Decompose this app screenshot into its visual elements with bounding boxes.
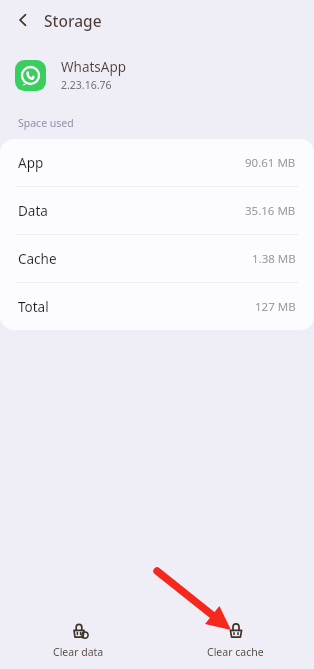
staticText: Total	[18, 298, 49, 316]
staticText: Space used	[18, 116, 74, 130]
staticText: Storage	[44, 10, 102, 31]
staticText: 1.38 MB	[252, 251, 296, 267]
button[interactable]: Clear data	[0, 609, 157, 669]
staticText: 35.16 MB	[245, 203, 296, 219]
button[interactable]: Cache	[0, 235, 314, 282]
button[interactable]: App	[0, 139, 314, 186]
button[interactable]: WhatsApp	[0, 54, 314, 96]
staticText: Data	[18, 202, 48, 220]
staticText: WhatsApp	[61, 58, 127, 76]
button[interactable]: Total	[0, 283, 314, 330]
button[interactable]: Clear cache	[157, 609, 314, 669]
button[interactable]: Data	[0, 187, 314, 234]
staticText: Cache	[18, 250, 57, 268]
staticText: Clear data	[53, 645, 104, 659]
staticText: 127 MB	[255, 299, 296, 315]
staticText: 2.23.16.76	[61, 78, 112, 92]
button[interactable]: Back	[8, 5, 38, 35]
staticText: 90.61 MB	[245, 155, 296, 171]
staticText: Clear cache	[207, 645, 264, 659]
staticText: App	[18, 154, 44, 172]
